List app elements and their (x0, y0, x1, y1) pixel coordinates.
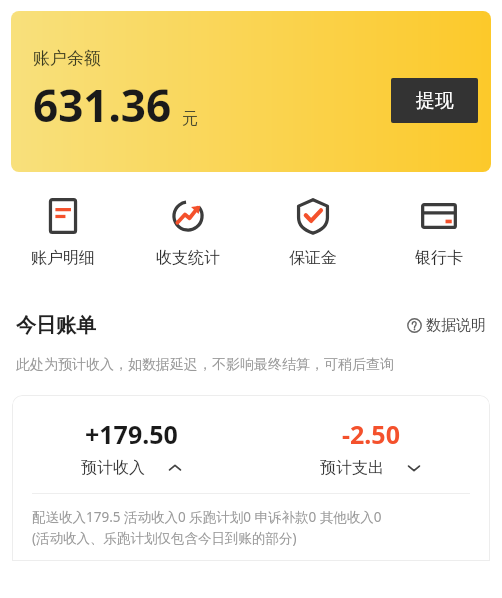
staticText: 此处为预计收入，如数据延迟，不影响最终结算，可稍后查询 (16, 356, 394, 374)
staticText: -2.50 (342, 417, 400, 451)
staticText: 预计收入 (81, 458, 145, 478)
staticText: 银行卡 (415, 248, 463, 268)
button[interactable]: 银行卡 (376, 197, 502, 268)
staticText: 收支统计 (156, 248, 220, 268)
button[interactable]: 收支统计 (125, 197, 250, 268)
button[interactable]: 数据说明 (407, 316, 486, 335)
staticText: +179.50 (85, 417, 178, 451)
button[interactable]: 账户余额 (11, 11, 491, 172)
staticText: 预计支出 (320, 458, 384, 478)
other: 账户明细 (44, 197, 82, 235)
staticText: 配送收入179.5 活动收入0 乐跑计划0 申诉补款0 其他收入0 (32, 508, 382, 526)
other: 收支统计 (169, 197, 207, 235)
other: 保证金 (294, 197, 332, 235)
button[interactable]: 提现 (391, 78, 478, 123)
staticText: (活动收入、乐跑计划仅包含今日到账的部分) (32, 529, 297, 547)
staticText: 账户明细 (31, 248, 95, 268)
button[interactable]: +179.50 (12, 417, 251, 478)
button[interactable]: 账户明细 (0, 197, 125, 268)
button[interactable]: -2.50 (251, 417, 490, 478)
staticText: 账户余额 (33, 48, 101, 69)
staticText: 保证金 (289, 248, 337, 268)
staticText: 631.36 (33, 75, 172, 135)
staticText: 提现 (416, 89, 454, 113)
staticText: 元 (182, 109, 198, 129)
staticText: 今日账单 (16, 313, 96, 338)
staticText: 数据说明 (426, 316, 486, 335)
button[interactable]: 保证金 (250, 197, 376, 268)
other: 银行卡 (420, 197, 458, 235)
